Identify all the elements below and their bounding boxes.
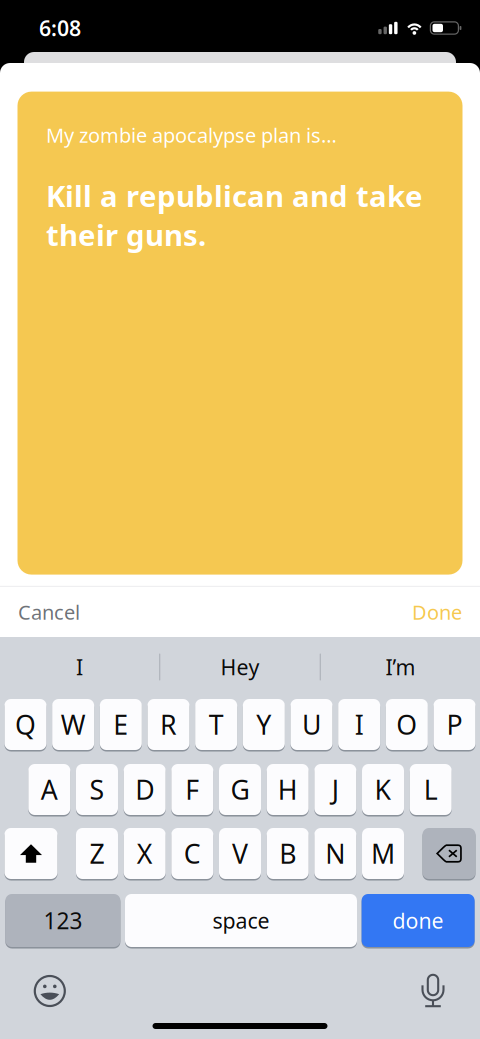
staticText: W [61,707,86,742]
staticText: Q [15,707,36,742]
staticText: done [393,906,444,935]
staticText: I [76,653,83,681]
staticText: D [135,772,154,807]
button[interactable]: Delete [422,827,475,880]
button[interactable]: I [0,637,159,689]
staticText: V [232,836,248,871]
staticText: F [185,772,199,807]
staticText: T [209,707,224,742]
button[interactable]: Emoji keyboard [33,974,65,1006]
staticText: 6:08 [39,14,81,42]
staticText: H [278,772,298,807]
staticText: S [89,772,104,807]
staticText: Y [256,707,271,742]
button[interactable]: U [290,698,332,751]
staticText: U [302,707,321,742]
button[interactable]: O [386,698,428,751]
button[interactable]: C [171,827,213,880]
staticText: Hey [220,653,259,681]
staticText: 123 [43,905,82,935]
button[interactable]: G [219,763,261,816]
staticText: O [396,707,417,742]
button[interactable]: I’m [321,637,480,689]
button[interactable]: done [362,893,475,948]
button[interactable]: B [267,827,309,880]
button[interactable]: R [147,698,189,751]
button[interactable]: S [76,763,118,816]
button[interactable]: T [195,698,237,751]
button[interactable]: V [219,827,261,880]
staticText: P [446,707,462,742]
staticText: A [41,772,58,807]
staticText: Z [89,836,104,871]
button[interactable]: Z [76,827,118,880]
staticText: C [184,836,201,871]
button[interactable]: K [362,763,404,816]
button[interactable]: L [410,763,452,816]
button[interactable]: A [28,763,70,816]
button[interactable]: E [100,698,142,751]
button[interactable]: space [125,893,357,948]
button[interactable]: Y [243,698,285,751]
staticText: I [355,707,364,742]
button[interactable]: J [314,763,356,816]
staticText: K [374,772,391,807]
button[interactable]: Done [396,584,480,640]
button[interactable]: M [362,827,404,880]
staticText: Kill a republican and take their guns. [46,176,423,254]
staticText: B [279,836,296,871]
button[interactable]: Shift [4,827,57,880]
button[interactable]: N [314,827,356,880]
button[interactable]: Q [4,698,46,751]
button[interactable]: Cancel [0,584,96,640]
staticText: R [160,707,177,742]
staticText: Done [412,599,462,625]
button[interactable]: X [124,827,166,880]
button[interactable]: Hey [160,637,320,689]
staticText: X [137,836,153,871]
staticText: N [325,836,345,871]
button[interactable]: W [52,698,94,751]
staticText: space [212,906,269,935]
button[interactable]: I [338,698,380,751]
button[interactable]: Dictation [422,973,443,1006]
button[interactable]: F [171,763,213,816]
staticText: I’m [385,653,415,681]
button[interactable]: P [433,698,475,751]
staticText: M [371,836,395,871]
staticText: My zombie apocalypse plan is… [46,122,337,148]
button[interactable]: H [267,763,309,816]
staticText: J [332,772,339,807]
staticText: G [230,772,249,807]
staticText: L [424,772,438,807]
button[interactable]: D [124,763,166,816]
staticText: E [113,707,128,742]
button[interactable]: 123 [5,893,120,948]
staticText: Cancel [18,599,80,625]
